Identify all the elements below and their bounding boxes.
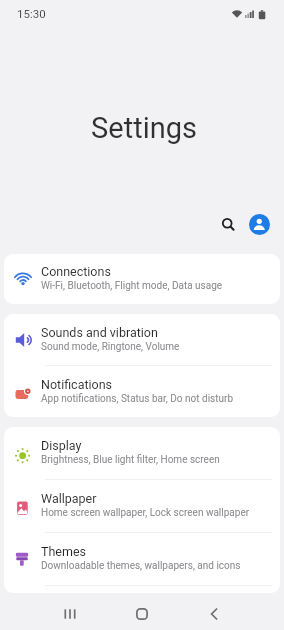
staticText: Notifications xyxy=(41,377,113,392)
staticText: Sounds and vibration xyxy=(41,325,158,340)
staticText: Wallpaper xyxy=(41,491,97,506)
staticText: Display xyxy=(41,438,82,453)
button[interactable] xyxy=(130,602,154,626)
staticText: Wi-Fi, Bluetooth, Flight mode, Data usag… xyxy=(41,280,223,292)
button[interactable] xyxy=(202,602,226,626)
button[interactable] xyxy=(213,209,241,237)
staticText: Downloadable themes, wallpapers, and ico… xyxy=(41,560,241,572)
button[interactable]: Connections xyxy=(4,254,280,304)
staticText: Themes xyxy=(41,544,87,559)
button[interactable]: Sounds and vibration xyxy=(4,314,280,365)
staticText: Connections xyxy=(41,264,111,279)
button[interactable] xyxy=(58,602,82,626)
button[interactable]: Themes xyxy=(4,533,280,585)
staticText: Settings xyxy=(2,111,284,145)
staticText: Brightness, Blue light filter, Home scre… xyxy=(41,454,220,466)
button[interactable]: Wallpaper xyxy=(4,480,280,532)
staticText: Sound mode, Ringtone, Volume xyxy=(41,341,180,353)
staticText: 15:30 xyxy=(17,7,46,20)
button[interactable]: Notifications xyxy=(4,366,280,417)
button[interactable]: Display xyxy=(4,427,280,479)
staticText: App notifications, Status bar, Do not di… xyxy=(41,393,234,405)
staticText: Home screen wallpaper, Lock screen wallp… xyxy=(41,507,250,519)
button[interactable] xyxy=(249,214,270,235)
